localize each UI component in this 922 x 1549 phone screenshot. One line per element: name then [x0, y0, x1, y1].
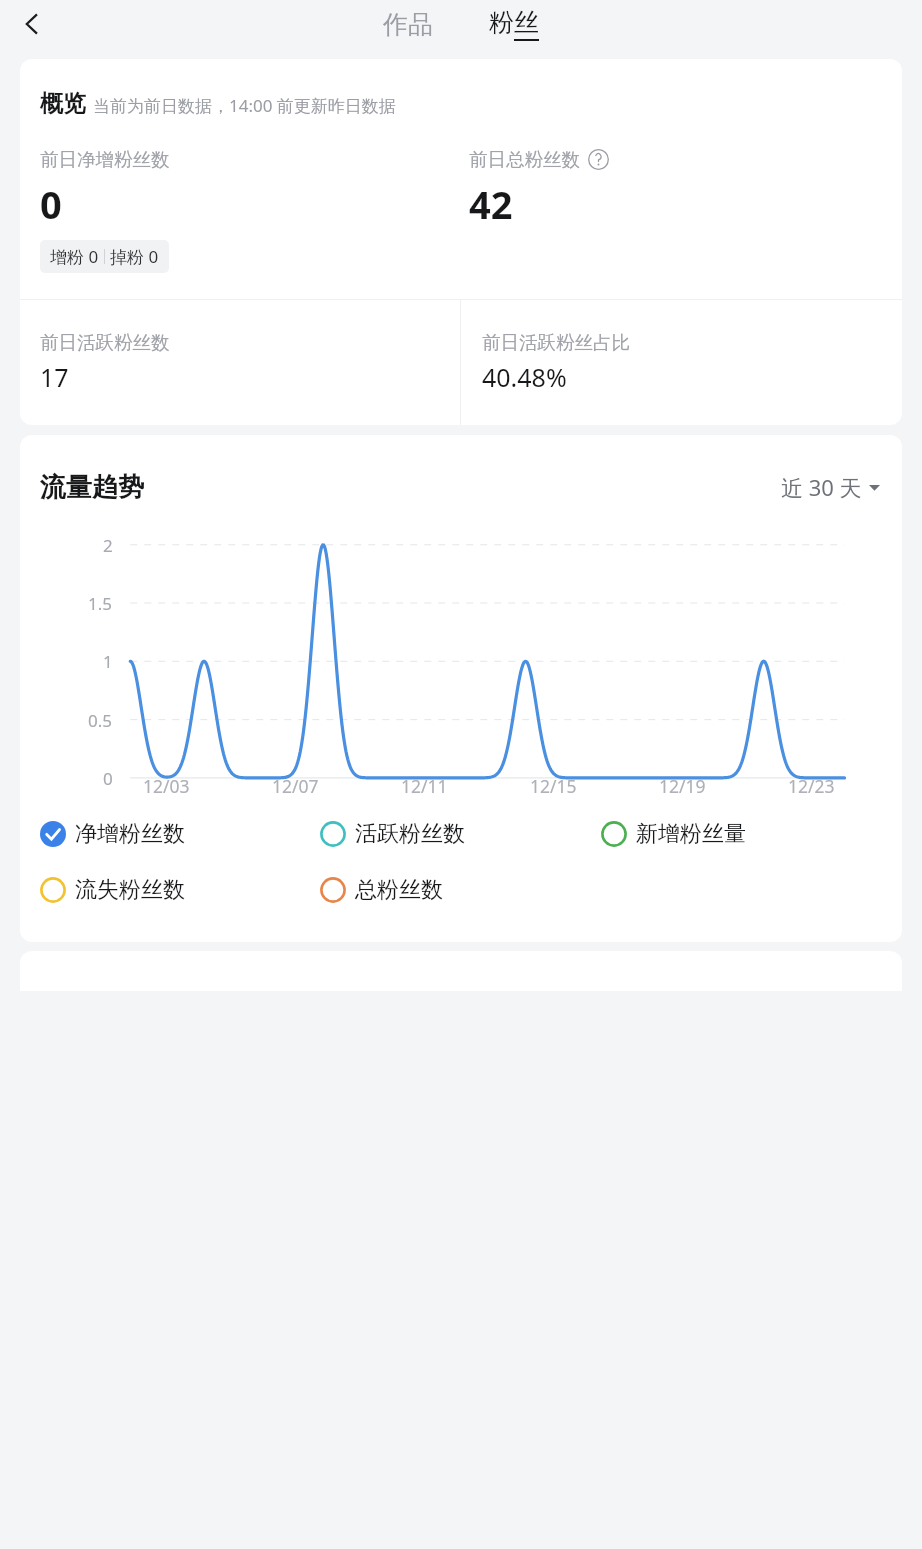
staticText: 12/23	[788, 774, 835, 798]
staticText: 42	[469, 178, 513, 230]
staticText: 概览	[40, 89, 86, 118]
staticText: 12/03	[143, 774, 190, 798]
staticText: 流失粉丝数	[75, 876, 185, 904]
staticText: 前日活跃粉丝数	[40, 331, 170, 354]
staticText: 0	[103, 767, 113, 790]
staticText: 2	[103, 534, 113, 557]
staticText: 40.48%	[482, 360, 567, 394]
button[interactable]: 说明	[588, 149, 609, 170]
staticText: 1	[103, 650, 113, 673]
button[interactable]: 总粉丝数	[320, 874, 601, 906]
staticText: 0.5	[88, 709, 113, 732]
staticText: 12/15	[530, 774, 577, 798]
staticText: 前日总粉丝数	[469, 148, 580, 171]
button[interactable]: Back	[10, 2, 54, 46]
button[interactable]: 新增粉丝量	[601, 818, 882, 850]
staticText: 流量趋势	[40, 471, 144, 504]
button[interactable]: 增粉 0	[40, 240, 169, 273]
staticText: 作品	[383, 9, 433, 40]
staticText: 12/19	[659, 774, 706, 798]
staticText: 粉丝	[489, 7, 539, 38]
staticText: 近 30 天	[781, 472, 862, 502]
button[interactable]: 流失粉丝数	[40, 874, 320, 906]
button[interactable]: 近 30 天	[779, 468, 882, 506]
staticText: 总粉丝数	[355, 876, 443, 904]
button[interactable]: 粉丝	[475, 3, 553, 45]
button[interactable]: 活跃粉丝数	[320, 818, 601, 850]
staticText: 前日活跃粉丝占比	[482, 331, 630, 354]
staticText: 增粉 0	[50, 245, 99, 268]
staticText: 0	[40, 178, 62, 230]
staticText: 12/11	[401, 774, 448, 798]
staticText: 活跃粉丝数	[355, 820, 465, 848]
staticText: 当前为前日数据，14:00 前更新昨日数据	[93, 94, 396, 117]
button[interactable]: 净增粉丝数	[40, 818, 320, 850]
staticText: 掉粉 0	[110, 245, 159, 268]
staticText: 前日净增粉丝数	[40, 148, 170, 171]
button[interactable]: 作品	[369, 5, 447, 44]
staticText: 12/07	[272, 774, 319, 798]
staticText: 17	[40, 360, 69, 394]
staticText: 新增粉丝量	[636, 820, 746, 848]
staticText: 1.5	[88, 592, 113, 615]
staticText: 净增粉丝数	[75, 820, 185, 848]
